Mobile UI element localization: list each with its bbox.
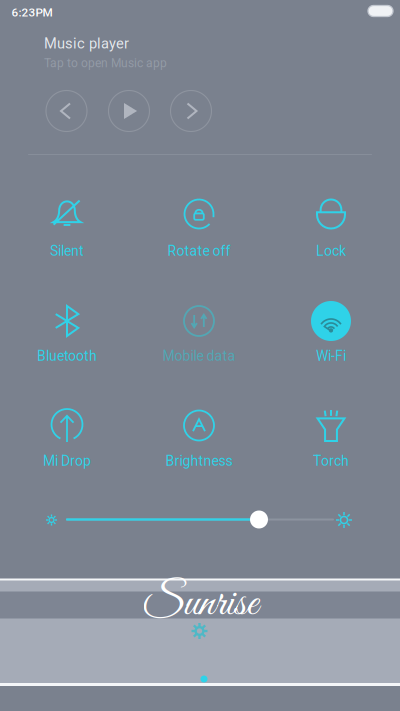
button[interactable]: Mobile data: [141, 295, 257, 368]
staticText: Rotate off: [167, 243, 230, 259]
button[interactable]: Wi-Fi: [273, 295, 389, 368]
staticText: Sunrise: [141, 576, 258, 632]
button[interactable]: Silent: [9, 188, 125, 263]
button[interactable]: Torch: [273, 399, 389, 473]
button[interactable]: Brightness: [141, 399, 257, 473]
button[interactable]: Previous: [42, 87, 90, 135]
staticText: Silent: [50, 243, 84, 259]
staticText: Bluetooth: [37, 348, 97, 364]
button[interactable]: Play: [105, 87, 153, 135]
button[interactable]: Music player: [44, 35, 244, 75]
staticText: Lock: [316, 243, 346, 259]
staticText: Mi Drop: [43, 453, 91, 469]
staticText: Torch: [313, 453, 349, 469]
button[interactable]: Brightness level: [242, 502, 276, 536]
button[interactable]: Mi Drop: [9, 399, 125, 473]
button[interactable]: Next: [167, 87, 215, 135]
button[interactable]: Rotate off: [141, 188, 257, 263]
button[interactable]: Sunrise: [110, 585, 290, 623]
staticText: Mobile data: [162, 348, 235, 364]
staticText: Wi-Fi: [316, 348, 346, 364]
staticText: Brightness: [165, 453, 232, 469]
button[interactable]: Settings: [182, 614, 216, 648]
staticText: 6:23PM: [11, 6, 52, 19]
staticText: Music player: [44, 35, 129, 52]
button[interactable]: Lock: [273, 188, 389, 263]
button[interactable]: Bluetooth: [9, 295, 125, 368]
staticText: Tap to open Music app: [44, 56, 167, 70]
